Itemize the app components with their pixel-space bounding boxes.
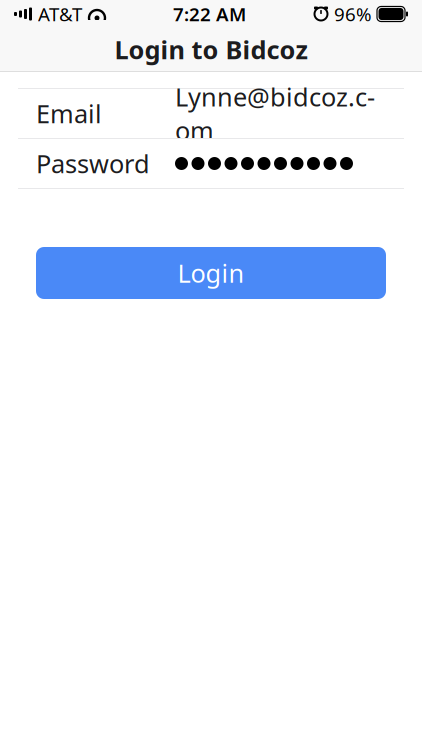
staticText: Login to Bidcoz [114,33,307,66]
button[interactable]: Password [0,139,422,188]
staticText: AT&T [38,2,82,26]
staticText: 7:22 AM [173,2,246,26]
button[interactable]: Email [0,89,422,138]
staticText: Login [177,256,244,290]
staticText: Lynne@bidcoz.com [175,80,375,147]
staticText: 96% [334,2,372,26]
button[interactable]: Login [36,247,386,299]
staticText: Email [36,97,102,130]
staticText: Password [36,147,150,180]
